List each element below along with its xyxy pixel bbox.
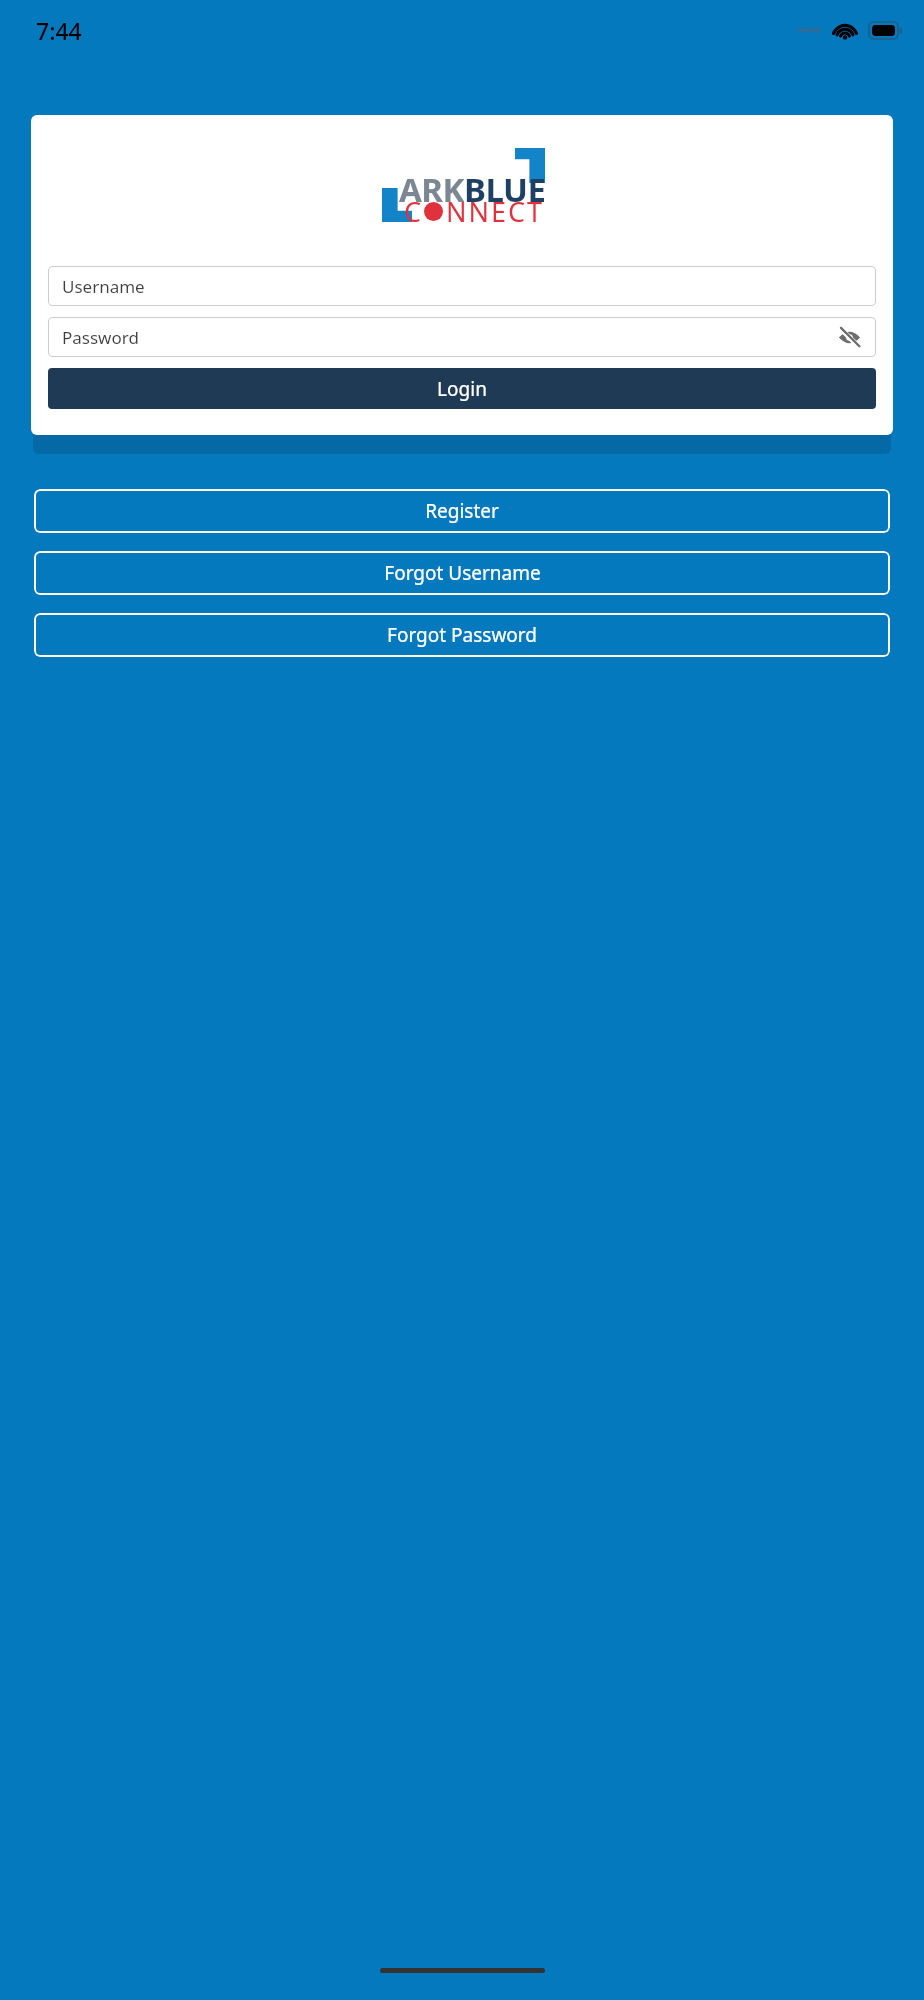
staticText: BLUE bbox=[464, 167, 546, 212]
staticText: Password bbox=[62, 326, 139, 349]
staticText: Login bbox=[437, 376, 487, 402]
button[interactable]: Register bbox=[34, 489, 890, 533]
button[interactable]: Forgot Username bbox=[34, 551, 890, 595]
staticText: NNECT bbox=[446, 193, 545, 230]
button[interactable]: Password bbox=[48, 317, 876, 357]
staticText: 7:44 bbox=[36, 15, 82, 46]
staticText: C bbox=[404, 193, 424, 230]
button[interactable]: Forgot Password bbox=[34, 613, 890, 657]
button[interactable]: Show password bbox=[834, 322, 864, 352]
staticText: Forgot Password bbox=[387, 622, 537, 648]
button[interactable]: Username bbox=[48, 266, 876, 306]
staticText: Register bbox=[425, 498, 499, 524]
staticText: Username bbox=[62, 275, 145, 298]
button[interactable]: Login bbox=[48, 368, 876, 409]
staticText: ARK bbox=[399, 167, 464, 212]
staticText: Forgot Username bbox=[384, 560, 541, 586]
